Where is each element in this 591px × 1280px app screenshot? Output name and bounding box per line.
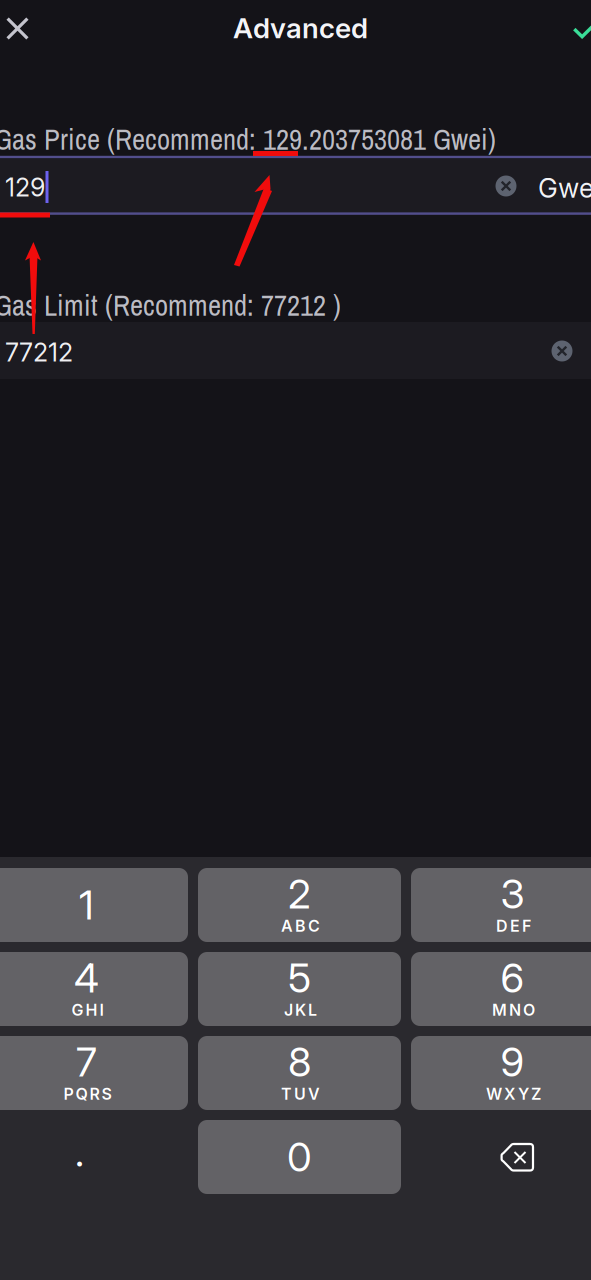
button[interactable]: 4 bbox=[0, 952, 188, 1026]
staticText: 0 bbox=[287, 1133, 312, 1181]
staticText: 2 bbox=[288, 870, 311, 918]
staticText: 6 bbox=[500, 954, 524, 1002]
staticText: Advanced bbox=[233, 11, 368, 45]
staticText: JKL bbox=[284, 1000, 317, 1020]
button[interactable]: 0 bbox=[198, 1120, 401, 1194]
staticText: 129 bbox=[5, 172, 45, 203]
staticText: DEF bbox=[496, 916, 531, 936]
staticText: PQRS bbox=[63, 1084, 111, 1104]
staticText: Gwei bbox=[538, 172, 591, 204]
button[interactable]: 6 bbox=[411, 952, 591, 1026]
staticText: WXYZ bbox=[486, 1084, 541, 1104]
staticText: MNO bbox=[492, 1000, 535, 1020]
staticText: 8 bbox=[288, 1038, 311, 1086]
button[interactable]: Delete bbox=[411, 1120, 591, 1194]
staticText: Gas Price (Recommend: 129.203753081 Gwei… bbox=[0, 120, 496, 159]
staticText: GHI bbox=[71, 1000, 103, 1020]
button[interactable]: 1 bbox=[0, 868, 188, 942]
button[interactable]: 9 bbox=[411, 1036, 591, 1110]
button[interactable]: 3 bbox=[411, 868, 591, 942]
button[interactable]: 7 bbox=[0, 1036, 188, 1110]
staticText: 1 bbox=[79, 881, 94, 929]
staticText: Gas Limit (Recommend: 77212 ) bbox=[0, 286, 341, 325]
staticText: TUV bbox=[281, 1084, 320, 1104]
button[interactable]: Clear gas limit bbox=[542, 331, 582, 371]
button[interactable]: 8 bbox=[198, 1036, 401, 1110]
button[interactable]: Close bbox=[0, 0, 45, 56]
staticText: ABC bbox=[281, 916, 320, 936]
button[interactable]: Clear gas price bbox=[486, 166, 526, 206]
staticText: 5 bbox=[288, 954, 311, 1002]
button[interactable]: 5 bbox=[198, 952, 401, 1026]
staticText: 3 bbox=[500, 870, 524, 918]
staticText: 9 bbox=[500, 1038, 524, 1086]
staticText: 4 bbox=[74, 954, 99, 1002]
button[interactable]: 2 bbox=[198, 868, 401, 942]
button[interactable]: . bbox=[0, 1120, 188, 1194]
staticText: 77212 bbox=[5, 337, 73, 368]
button[interactable]: Confirm bbox=[559, 0, 591, 56]
staticText: 7 bbox=[76, 1038, 97, 1086]
staticText: . bbox=[75, 1128, 84, 1176]
